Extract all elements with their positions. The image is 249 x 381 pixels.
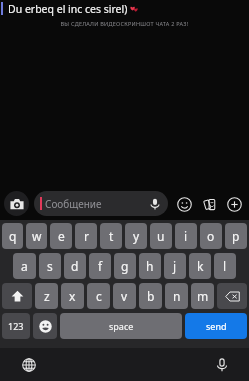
- staticText: d: [71, 258, 79, 274]
- button[interactable]: z: [35, 283, 58, 309]
- staticText: u: [157, 228, 165, 244]
- button[interactable]: r: [75, 223, 97, 249]
- staticText: t: [109, 228, 114, 244]
- staticText: r: [84, 228, 89, 244]
- button[interactable]: d: [64, 253, 86, 279]
- button[interactable]: 123: [2, 313, 30, 339]
- staticText: a: [21, 258, 28, 274]
- button[interactable]: k: [189, 253, 211, 279]
- staticText: m: [197, 288, 209, 304]
- staticText: Сообщение: [45, 197, 102, 211]
- staticText: f: [98, 258, 103, 274]
- button[interactable]: q: [2, 223, 23, 249]
- button[interactable]: f: [89, 253, 111, 279]
- button[interactable]: Stickers: [198, 193, 220, 215]
- staticText: q: [9, 228, 17, 244]
- staticText: 123: [8, 320, 24, 332]
- button[interactable]: b: [139, 283, 162, 309]
- staticText: h: [146, 258, 154, 274]
- button[interactable]: w: [26, 223, 47, 249]
- button[interactable]: s: [39, 253, 61, 279]
- button[interactable]: Attach: [223, 193, 245, 215]
- button[interactable]: y: [125, 223, 147, 249]
- button[interactable]: x: [61, 283, 84, 309]
- staticText: z: [44, 288, 50, 304]
- button[interactable]: Voice input: [210, 353, 234, 377]
- staticText: w: [32, 228, 42, 244]
- button[interactable]: Backspace: [217, 283, 247, 309]
- staticText: space: [109, 320, 134, 332]
- button[interactable]: a: [13, 253, 36, 279]
- button[interactable]: Du erbeq el inc ces sirel): [0, 0, 249, 17]
- staticText: ВЫ СДЕЛАЛИ ВИДЕОСКРИНШОТ ЧАТА 2 РАЗ!: [0, 20, 249, 27]
- button[interactable]: p: [225, 223, 247, 249]
- staticText: send: [206, 320, 227, 332]
- staticText: g: [121, 258, 129, 274]
- staticText: s: [47, 258, 53, 274]
- button[interactable]: v: [113, 283, 136, 309]
- staticText: l: [223, 258, 227, 274]
- staticText: o: [207, 228, 215, 244]
- staticText: p: [232, 228, 240, 244]
- button[interactable]: j: [164, 253, 186, 279]
- button[interactable]: Emoji keyboard: [33, 313, 57, 339]
- button[interactable]: i: [175, 223, 197, 249]
- button[interactable]: Change language: [17, 353, 41, 377]
- button[interactable]: t: [100, 223, 122, 249]
- staticText: i: [184, 228, 188, 244]
- button[interactable]: n: [165, 283, 188, 309]
- staticText: k: [197, 258, 204, 274]
- button[interactable]: send: [185, 313, 247, 339]
- button[interactable]: Voice message: [147, 196, 163, 212]
- button[interactable]: u: [150, 223, 172, 249]
- staticText: x: [69, 288, 76, 304]
- button[interactable]: Shift: [2, 283, 32, 309]
- button[interactable]: Emoji: [173, 193, 195, 215]
- button[interactable]: Camera: [4, 191, 29, 216]
- staticText: j: [173, 258, 177, 274]
- staticText: Du erbeq el inc ces sirel): [8, 2, 128, 16]
- button[interactable]: l: [214, 253, 236, 279]
- button[interactable]: space: [60, 313, 182, 339]
- button[interactable]: g: [114, 253, 136, 279]
- staticText: b: [147, 288, 155, 304]
- button[interactable]: m: [191, 283, 214, 309]
- button[interactable]: Сообщение: [34, 191, 168, 216]
- button[interactable]: c: [87, 283, 110, 309]
- staticText: v: [121, 288, 128, 304]
- button[interactable]: e: [50, 223, 72, 249]
- button[interactable]: o: [200, 223, 222, 249]
- staticText: c: [96, 288, 102, 304]
- staticText: y: [133, 228, 140, 244]
- staticText: n: [173, 288, 181, 304]
- button[interactable]: h: [139, 253, 161, 279]
- staticText: e: [58, 228, 65, 244]
